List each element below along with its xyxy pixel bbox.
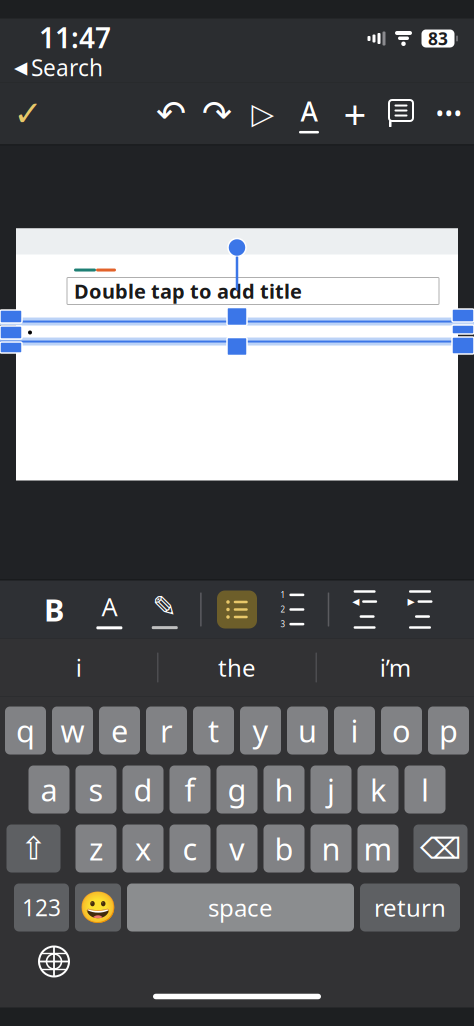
button[interactable]: q: [5, 706, 46, 754]
button[interactable]: Text color: [89, 587, 129, 631]
button[interactable]: p: [428, 706, 469, 754]
button[interactable]: Numbered list: [272, 587, 312, 631]
staticText: ↷: [202, 93, 232, 134]
staticText: ⌫: [420, 832, 461, 865]
staticText: p: [439, 710, 458, 751]
staticText: q: [16, 710, 35, 751]
button[interactable]: Back to Search: [0, 50, 103, 84]
button[interactable]: j: [310, 765, 351, 813]
button[interactable]: Bold: [34, 587, 74, 631]
staticText: x: [135, 828, 151, 869]
staticText: r: [160, 710, 173, 751]
button[interactable]: i’m: [317, 638, 474, 696]
staticText: d: [133, 769, 152, 810]
button[interactable]: i: [0, 638, 157, 696]
button[interactable]: Redo: [194, 88, 240, 138]
staticText: ✓: [13, 94, 42, 133]
button[interactable]: k: [357, 765, 398, 813]
button[interactable]: e: [99, 706, 140, 754]
button[interactable]: o: [381, 706, 422, 754]
staticText: Double tap to add title: [74, 278, 302, 304]
staticText: u: [298, 710, 317, 751]
button[interactable]: More options: [424, 88, 474, 138]
button[interactable]: z: [75, 824, 116, 872]
button[interactable]: space: [127, 883, 354, 931]
button[interactable]: Insert: [332, 88, 378, 138]
staticText: 1: [280, 590, 285, 600]
staticText: o: [392, 710, 411, 751]
button[interactable]: Format text: [286, 88, 332, 138]
staticText: c: [182, 828, 197, 869]
button[interactable]: Change keyboard: [34, 941, 74, 981]
button[interactable]: r: [146, 706, 187, 754]
staticText: ⇧: [20, 830, 47, 867]
button[interactable]: Undo: [148, 88, 194, 138]
staticText: a: [40, 769, 57, 810]
staticText: Search: [31, 52, 103, 82]
staticText: space: [208, 892, 273, 923]
button[interactable]: Highlight: [145, 587, 185, 631]
staticText: 😀: [79, 890, 117, 925]
staticText: l: [421, 769, 429, 810]
staticText: f: [184, 769, 195, 810]
staticText: i’m: [380, 652, 411, 683]
button[interactable]: b: [263, 824, 304, 872]
staticText: 3: [280, 619, 285, 629]
button[interactable]: Bulleted list: [217, 590, 257, 628]
button[interactable]: Emoji: [75, 883, 121, 931]
staticText: •••: [435, 98, 462, 128]
button[interactable]: Decrease indent: [345, 587, 385, 631]
staticText: w: [60, 710, 84, 751]
staticText: j: [327, 769, 335, 810]
button[interactable]: return: [360, 883, 460, 931]
staticText: ▶: [407, 596, 414, 607]
button[interactable]: y: [240, 706, 281, 754]
staticText: ◀: [352, 596, 359, 607]
staticText: s: [88, 769, 103, 810]
staticText: A: [300, 93, 317, 129]
button[interactable]: x: [122, 824, 163, 872]
button[interactable]: Comments: [378, 88, 424, 138]
button[interactable]: u: [287, 706, 328, 754]
button[interactable]: a: [28, 765, 69, 813]
button[interactable]: g: [216, 765, 257, 813]
button[interactable]: Delete: [413, 824, 467, 872]
button[interactable]: s: [75, 765, 116, 813]
button[interactable]: w: [52, 706, 93, 754]
staticText: B: [44, 589, 64, 630]
staticText: 2: [280, 604, 285, 615]
button[interactable]: l: [404, 765, 445, 813]
staticText: A: [101, 590, 117, 623]
button[interactable]: Done: [0, 88, 56, 138]
button[interactable]: m: [357, 824, 398, 872]
staticText: ↶: [156, 93, 186, 134]
staticText: e: [111, 710, 128, 751]
staticText: z: [89, 828, 103, 869]
staticText: return: [374, 892, 446, 923]
button[interactable]: i: [334, 706, 375, 754]
staticText: y: [252, 710, 268, 751]
staticText: b: [274, 828, 293, 869]
button[interactable]: c: [169, 824, 210, 872]
staticText: +: [343, 87, 366, 140]
button[interactable]: Shift: [6, 824, 60, 872]
button[interactable]: n: [310, 824, 351, 872]
button[interactable]: Numbers: [14, 883, 69, 931]
staticText: h: [274, 769, 293, 810]
button[interactable]: h: [263, 765, 304, 813]
button[interactable]: t: [193, 706, 234, 754]
button[interactable]: Increase indent: [400, 587, 440, 631]
staticText: v: [229, 828, 245, 869]
button[interactable]: f: [169, 765, 210, 813]
button[interactable]: v: [216, 824, 257, 872]
staticText: 123: [22, 892, 61, 922]
staticText: 83: [428, 27, 448, 50]
staticText: i: [76, 652, 82, 683]
button[interactable]: Play slideshow: [240, 88, 286, 138]
button[interactable]: the: [158, 638, 316, 696]
staticText: 11:47: [39, 19, 111, 56]
button[interactable]: d: [122, 765, 163, 813]
staticText: ◀: [14, 58, 27, 77]
staticText: m: [363, 828, 392, 869]
